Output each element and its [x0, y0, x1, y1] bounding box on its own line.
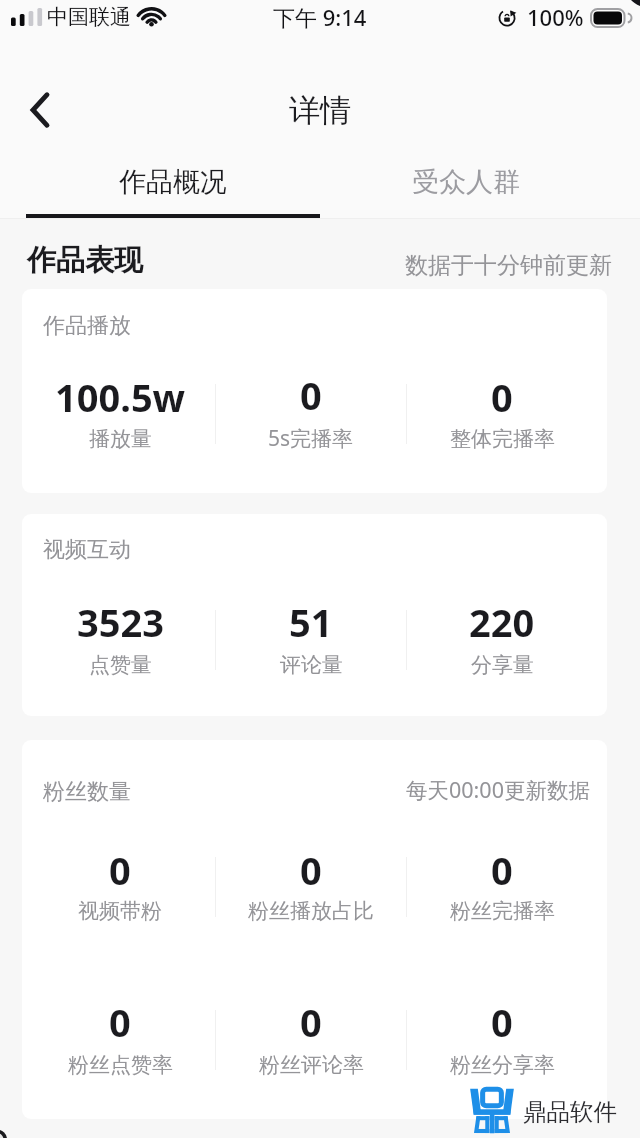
- staticText: 点赞量: [89, 652, 152, 678]
- staticText: 0: [491, 371, 513, 423]
- staticText: 0: [300, 369, 322, 421]
- staticText: 作品表现: [27, 242, 143, 279]
- staticText: 0: [491, 844, 513, 896]
- staticText: 数据于十分钟前更新: [405, 251, 612, 280]
- staticText: 鼎品软件: [523, 1097, 617, 1127]
- staticText: 粉丝点赞率: [68, 1052, 173, 1078]
- staticText: 视频带粉: [78, 898, 162, 924]
- staticText: 受众人群: [412, 165, 520, 199]
- staticText: 整体完播率: [450, 426, 555, 452]
- staticText: 详情: [289, 91, 351, 130]
- staticText: 粉丝完播率: [450, 898, 555, 924]
- staticText: 5s完播率: [268, 424, 354, 453]
- staticText: 评论量: [280, 652, 343, 678]
- staticText: 0: [109, 996, 131, 1048]
- staticText: 粉丝分享率: [450, 1052, 555, 1078]
- staticText: 作品概况: [119, 165, 227, 199]
- button[interactable]: 受众人群: [319, 144, 613, 199]
- staticText: 播放量: [89, 426, 152, 452]
- staticText: 220: [469, 596, 535, 648]
- staticText: 0: [300, 996, 322, 1048]
- staticText: 0: [109, 844, 131, 896]
- staticText: 粉丝数量: [43, 778, 131, 806]
- staticText: 粉丝播放占比: [248, 898, 374, 924]
- staticText: 0: [491, 996, 513, 1048]
- staticText: 中国联通: [47, 4, 131, 30]
- staticText: 3523: [77, 596, 164, 648]
- staticText: 100.5w: [55, 371, 186, 423]
- staticText: 视频互动: [43, 536, 131, 564]
- staticText: 每天00:00更新数据: [406, 775, 590, 804]
- staticText: 51: [289, 596, 333, 648]
- staticText: 0: [300, 844, 322, 896]
- staticText: 作品播放: [43, 312, 131, 340]
- staticText: 下午 9:14: [273, 2, 367, 32]
- staticText: 100%: [527, 2, 584, 32]
- button[interactable]: Back: [12, 82, 68, 138]
- staticText: 分享量: [471, 652, 534, 678]
- staticText: 粉丝评论率: [259, 1052, 364, 1078]
- button[interactable]: 作品概况: [26, 144, 319, 199]
